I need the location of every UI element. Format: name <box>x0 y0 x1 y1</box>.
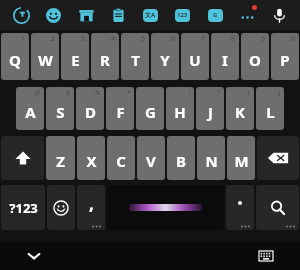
staticText: 8 <box>231 34 236 44</box>
staticText: - <box>158 88 161 98</box>
button[interactable]: ( <box>226 87 254 130</box>
button[interactable]: V <box>137 136 165 180</box>
button[interactable]: * <box>106 87 134 130</box>
staticText: ) <box>278 88 281 98</box>
button[interactable]: C <box>107 136 135 180</box>
button[interactable]: Clipboard <box>105 2 131 28</box>
staticText: Q <box>9 50 21 70</box>
staticText: ? <box>217 88 221 98</box>
button[interactable]: 8 <box>211 33 239 80</box>
button[interactable]: 3 <box>61 33 89 80</box>
staticText: B <box>176 151 186 171</box>
button[interactable]: Space <box>107 185 224 230</box>
button[interactable]: Translate <box>137 2 163 28</box>
staticText: G <box>213 11 218 19</box>
staticText: 2 <box>51 34 56 44</box>
staticText: 6 <box>171 34 176 44</box>
staticText: * <box>127 88 131 98</box>
staticText: C <box>116 151 126 171</box>
staticText: 9 <box>261 34 266 44</box>
button[interactable]: X <box>77 136 105 180</box>
staticText: E <box>71 50 80 70</box>
staticText: ! <box>189 88 191 98</box>
staticText: Y <box>160 50 170 70</box>
button[interactable]: 0 <box>271 33 299 80</box>
button[interactable]: Change keyboard <box>254 244 278 268</box>
button[interactable]: - <box>136 87 164 130</box>
staticText: , <box>89 192 94 215</box>
staticText: 7 <box>201 34 206 44</box>
button[interactable]: ! <box>166 87 194 130</box>
staticText: Z <box>56 151 65 171</box>
button[interactable]: Hide keyboard <box>22 244 46 268</box>
staticText: ( <box>248 88 251 98</box>
staticText: M <box>234 151 249 171</box>
staticText: 3 <box>81 34 86 44</box>
button[interactable]: ? <box>196 87 224 130</box>
button[interactable]: Symbols <box>1 185 45 230</box>
staticText: V <box>146 151 156 171</box>
button[interactable]: Z <box>46 136 75 180</box>
button[interactable]: More options <box>234 2 260 28</box>
staticText: A <box>25 102 36 122</box>
staticText: H <box>174 102 186 122</box>
staticText: U <box>189 50 201 70</box>
button[interactable]: 2 <box>31 33 59 80</box>
staticText: K <box>235 102 245 122</box>
button[interactable]: Numbers <box>169 2 195 28</box>
staticText: # <box>66 88 71 98</box>
button[interactable]: Gboard <box>8 2 34 28</box>
staticText: N <box>205 151 218 171</box>
button[interactable]: 5 <box>121 33 149 80</box>
button[interactable]: Shift <box>1 136 44 180</box>
staticText: P <box>280 50 290 70</box>
button[interactable]: @ <box>16 87 44 130</box>
button[interactable]: 7 <box>181 33 209 80</box>
button[interactable]: 6 <box>151 33 179 80</box>
staticText: D <box>85 102 96 122</box>
staticText: F <box>116 102 125 122</box>
staticText: J <box>208 102 213 122</box>
button[interactable]: 4 <box>91 33 119 80</box>
button[interactable]: # <box>46 87 74 130</box>
staticText: T <box>131 50 140 70</box>
staticText: G <box>145 102 156 122</box>
button[interactable]: Comma <box>77 185 105 230</box>
button[interactable]: B <box>167 136 195 180</box>
button[interactable]: & <box>76 87 104 130</box>
staticText: @ <box>34 88 41 98</box>
button[interactable]: Stickers <box>73 2 99 28</box>
staticText: 文A <box>145 11 156 19</box>
button[interactable]: 9 <box>241 33 269 80</box>
button[interactable]: Search <box>256 185 299 230</box>
staticText: ?123 <box>9 199 38 217</box>
staticText: O <box>249 50 261 70</box>
button[interactable]: M <box>227 136 255 180</box>
button[interactable]: Emoji <box>47 185 75 230</box>
staticText: W <box>38 50 53 70</box>
staticText: S <box>56 102 65 122</box>
button[interactable]: Themes <box>202 2 228 28</box>
staticText: 0 <box>291 34 296 44</box>
button[interactable]: Backspace <box>257 136 299 180</box>
staticText: X <box>86 151 97 171</box>
staticText: R <box>100 50 110 70</box>
staticText: & <box>95 88 101 98</box>
button[interactable]: Voice input <box>266 2 292 28</box>
button[interactable]: Period <box>226 185 254 230</box>
staticText: I <box>222 50 228 70</box>
button[interactable]: ) <box>256 87 284 130</box>
button[interactable]: 1 <box>1 33 29 80</box>
staticText: 123 <box>177 11 188 19</box>
staticText: 1 <box>21 34 26 44</box>
staticText: L <box>266 102 275 122</box>
button[interactable]: Emoji <box>40 2 66 28</box>
staticText: 5 <box>141 34 146 44</box>
button[interactable]: N <box>197 136 225 180</box>
staticText: 4 <box>111 34 116 44</box>
